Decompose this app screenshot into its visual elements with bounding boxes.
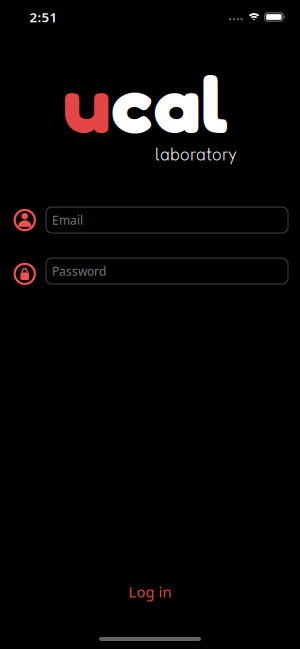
button[interactable]: Log in <box>128 582 171 601</box>
staticText: cal <box>110 55 227 151</box>
staticText: Password <box>52 263 106 279</box>
staticText: laboratory <box>155 142 237 165</box>
button[interactable]: Password <box>46 258 288 284</box>
staticText: u <box>62 55 110 151</box>
staticText: Email <box>52 212 83 228</box>
staticText: Log in <box>128 582 171 601</box>
staticText: 2:51 <box>29 8 57 26</box>
button[interactable]: Email <box>46 207 288 233</box>
